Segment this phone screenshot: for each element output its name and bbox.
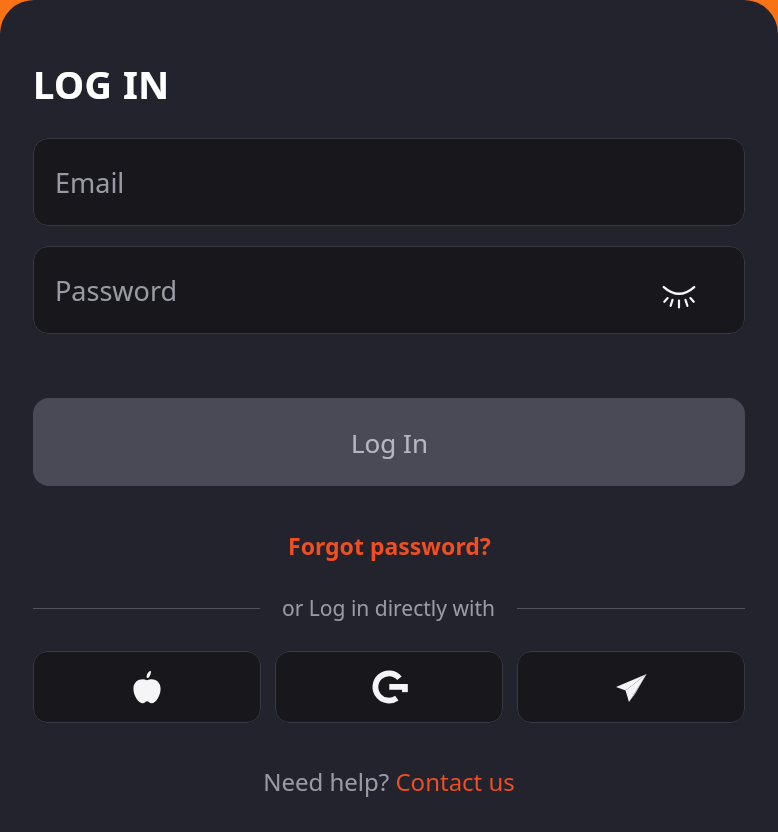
staticText: Email [55, 164, 125, 201]
staticText: LOG IN [33, 58, 170, 110]
staticText: Forgot password? [288, 530, 491, 561]
button[interactable]: Sign in with Telegram [517, 651, 745, 723]
button[interactable]: Email [33, 138, 745, 226]
button[interactable]: Sign in with Google [275, 651, 503, 723]
staticText: or Log in directly with [282, 594, 495, 623]
staticText: Log In [351, 425, 428, 460]
staticText: Need help? Contact us [263, 765, 515, 798]
button[interactable]: Log In [33, 398, 745, 486]
button[interactable]: Password [33, 246, 745, 334]
button[interactable]: Show password [657, 268, 701, 312]
button[interactable]: Sign in with Apple [33, 651, 261, 723]
button[interactable]: Need help? Contact us [255, 765, 523, 798]
staticText: Password [55, 272, 178, 309]
button[interactable]: Forgot password? [276, 524, 503, 567]
